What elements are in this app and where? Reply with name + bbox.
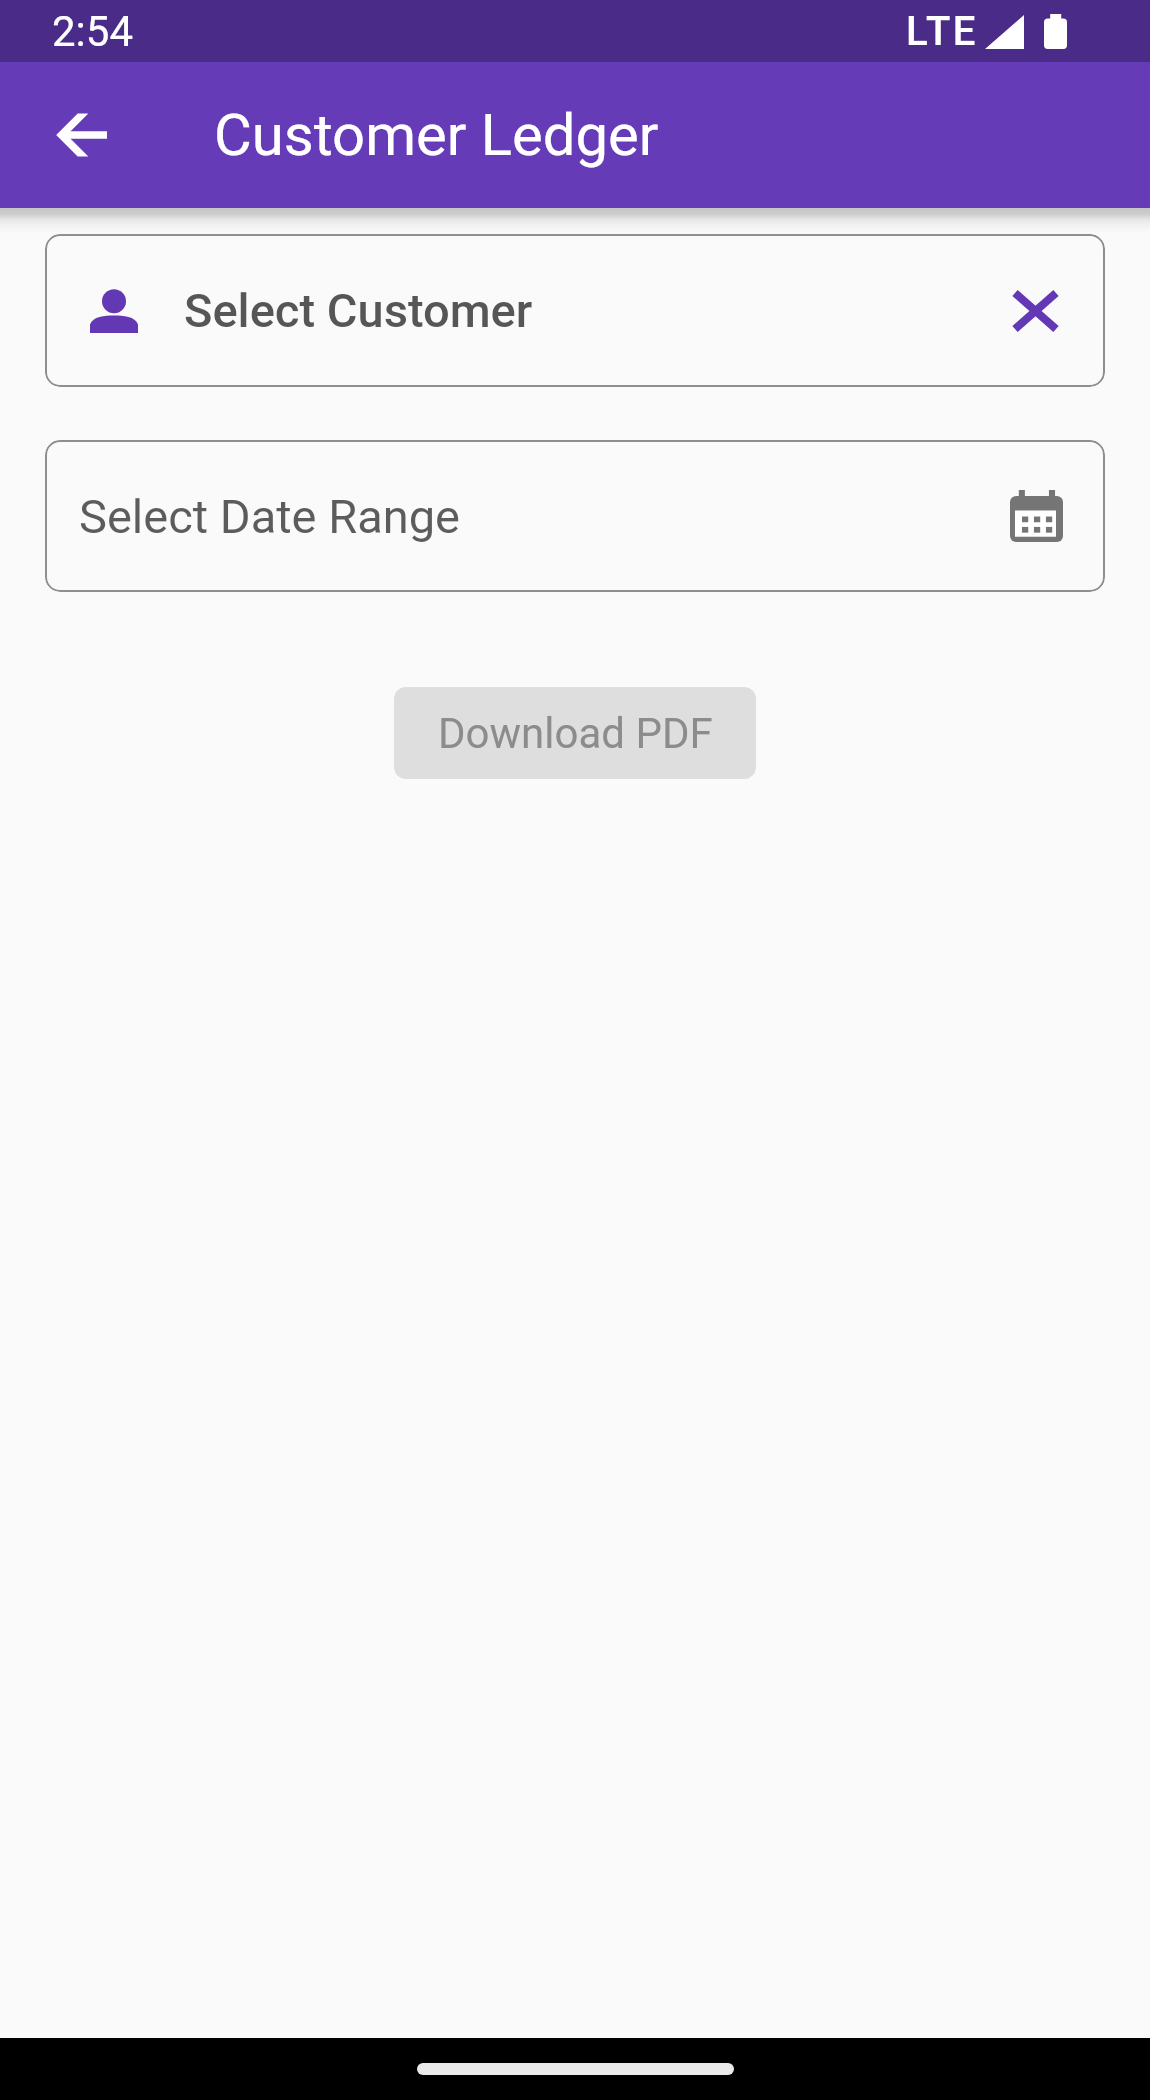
button[interactable]: Select Date Range	[45, 440, 1105, 592]
button[interactable]: Select Customer	[45, 234, 1105, 387]
staticText: LTE	[906, 8, 978, 55]
button[interactable]: Pick date range	[995, 475, 1077, 557]
button[interactable]: Back	[26, 79, 138, 191]
button[interactable]: Clear selected customer	[994, 270, 1076, 352]
staticText: Download PDF	[438, 709, 713, 758]
staticText: 2:54	[52, 7, 133, 56]
button[interactable]: Download PDF	[394, 687, 756, 779]
staticText: Customer Ledger	[214, 101, 659, 169]
staticText: Select Customer	[184, 283, 533, 338]
staticText: Select Date Range	[79, 489, 460, 544]
